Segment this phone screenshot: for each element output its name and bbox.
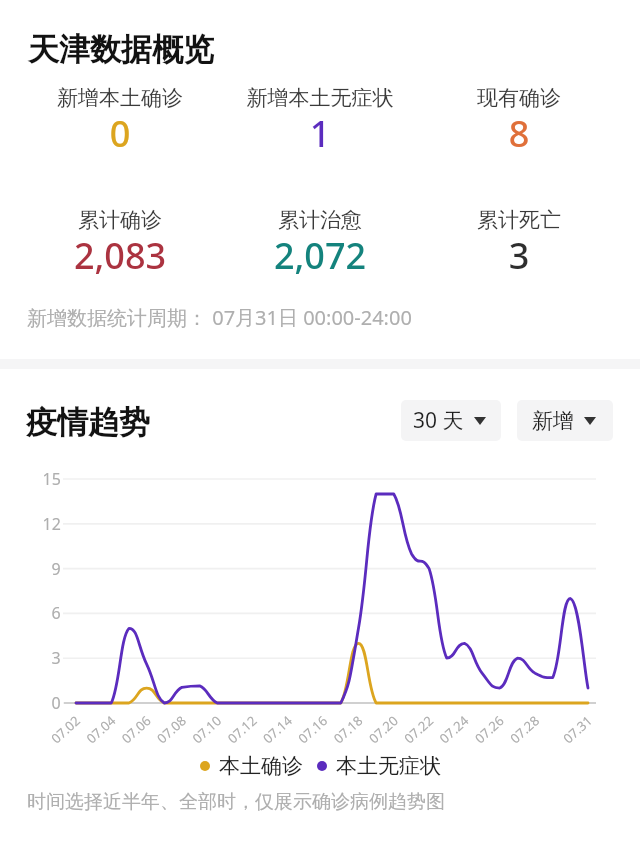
button[interactable]: 新增 xyxy=(517,400,613,441)
staticText: 本土确诊 xyxy=(219,753,303,779)
button[interactable]: 累计治愈 xyxy=(220,207,420,277)
staticText: 新增数据统计周期： 07月31日 00:00-24:00 xyxy=(27,304,412,331)
button[interactable]: 30 天 xyxy=(401,400,501,441)
staticText: 2,083 xyxy=(20,231,220,280)
staticText: 1 xyxy=(220,109,420,158)
staticText: 本土无症状 xyxy=(336,753,441,779)
staticText: 天津数据概览 xyxy=(28,30,214,69)
button[interactable]: 现有确诊 xyxy=(419,85,619,155)
button[interactable]: 新增本土无症状 xyxy=(220,85,420,155)
staticText: 新增 xyxy=(532,408,574,434)
staticText: 2,072 xyxy=(220,231,420,280)
button[interactable]: 新增本土确诊 xyxy=(20,85,220,155)
staticText: 30 天 xyxy=(413,406,464,435)
button[interactable]: 累计确诊 xyxy=(20,207,220,277)
staticText: 现有确诊 xyxy=(419,85,619,111)
staticText: 疫情趋势 xyxy=(26,403,150,442)
button[interactable]: 累计死亡 xyxy=(419,207,619,277)
staticText: 0 xyxy=(20,109,220,158)
staticText: 累计确诊 xyxy=(20,207,220,233)
staticText: 3 xyxy=(419,231,619,280)
staticText: 8 xyxy=(419,109,619,158)
staticText: 新增本土确诊 xyxy=(20,85,220,111)
staticText: 新增本土无症状 xyxy=(220,85,420,111)
staticText: 累计治愈 xyxy=(220,207,420,233)
staticText: 时间选择近半年、全部时，仅展示确诊病例趋势图 xyxy=(27,790,445,814)
staticText: 累计死亡 xyxy=(419,207,619,233)
